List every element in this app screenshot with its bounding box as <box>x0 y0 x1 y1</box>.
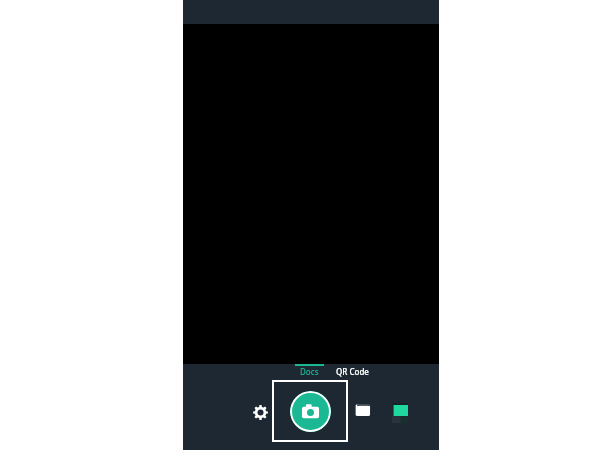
button[interactable]: QR Code <box>331 365 374 377</box>
button[interactable] <box>288 364 331 378</box>
button[interactable]: Document mode <box>349 396 377 424</box>
button[interactable]: Take picture <box>272 380 348 442</box>
staticText: QR Code <box>336 366 369 377</box>
button[interactable]: Docs <box>288 365 331 377</box>
staticText: Docs <box>300 366 319 377</box>
button[interactable]: Open last capture <box>392 403 408 423</box>
button[interactable]: Settings <box>246 398 274 426</box>
